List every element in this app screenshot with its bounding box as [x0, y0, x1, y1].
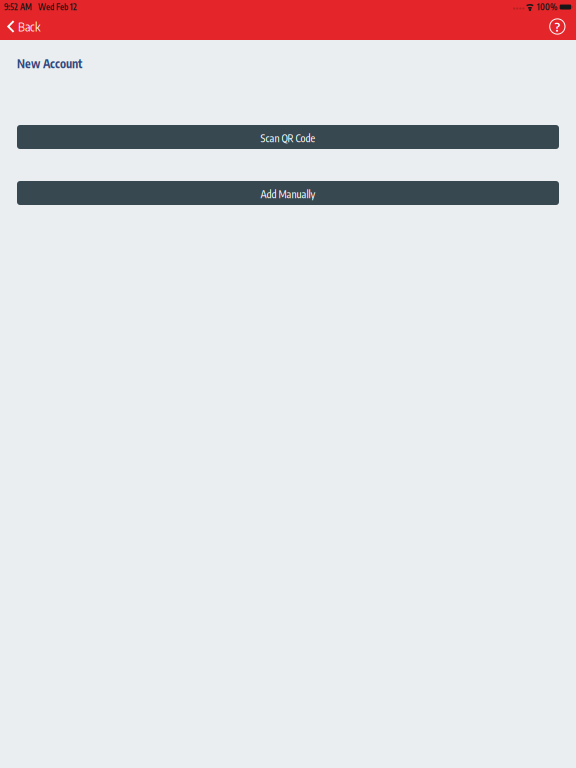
button[interactable]: Add Manually [17, 181, 559, 205]
staticText: Back [18, 19, 40, 34]
button[interactable]: Scan QR Code [17, 125, 559, 149]
staticText: ? [555, 18, 560, 34]
button[interactable]: Help [542, 13, 576, 39]
staticText: 9:52 AM [4, 2, 32, 12]
staticText: 100% [537, 2, 557, 12]
staticText: New Account [17, 56, 82, 71]
button[interactable]: Back [0, 13, 48, 39]
staticText: Wed Feb 12 [38, 2, 77, 12]
staticText: Scan QR Code [260, 132, 315, 144]
staticText: Add Manually [260, 188, 315, 200]
